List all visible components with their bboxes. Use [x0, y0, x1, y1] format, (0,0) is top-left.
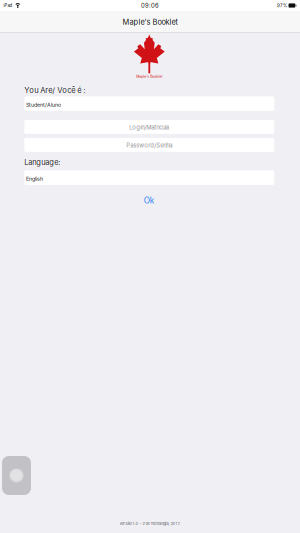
staticText: Maple's Booklet	[122, 17, 177, 26]
staticText: Language:	[24, 158, 60, 167]
button[interactable]: Login/Matrícula	[24, 120, 274, 134]
button[interactable]: Student/Aluno	[24, 96, 274, 111]
staticText: Ok	[144, 195, 155, 205]
staticText: You Are/ Você é :	[24, 86, 85, 95]
staticText: Login/Matrícula	[129, 124, 169, 131]
staticText: 09:06	[141, 2, 159, 9]
staticText: Password/Senha	[126, 142, 172, 149]
staticText: Maple's Booklet	[136, 74, 162, 79]
staticText: Student/Aluno	[26, 102, 61, 108]
button[interactable]: Password/Senha	[24, 138, 274, 152]
staticText: iPad	[4, 3, 13, 8]
staticText: 97%	[277, 3, 287, 8]
staticText: English	[26, 176, 43, 182]
staticText: versão 1.0 - Zoe Tecnologia, 2017.	[119, 521, 180, 526]
button[interactable]: Ok	[24, 191, 274, 209]
button[interactable]: English	[24, 170, 274, 185]
button[interactable]: AssistiveTouch	[2, 456, 31, 495]
